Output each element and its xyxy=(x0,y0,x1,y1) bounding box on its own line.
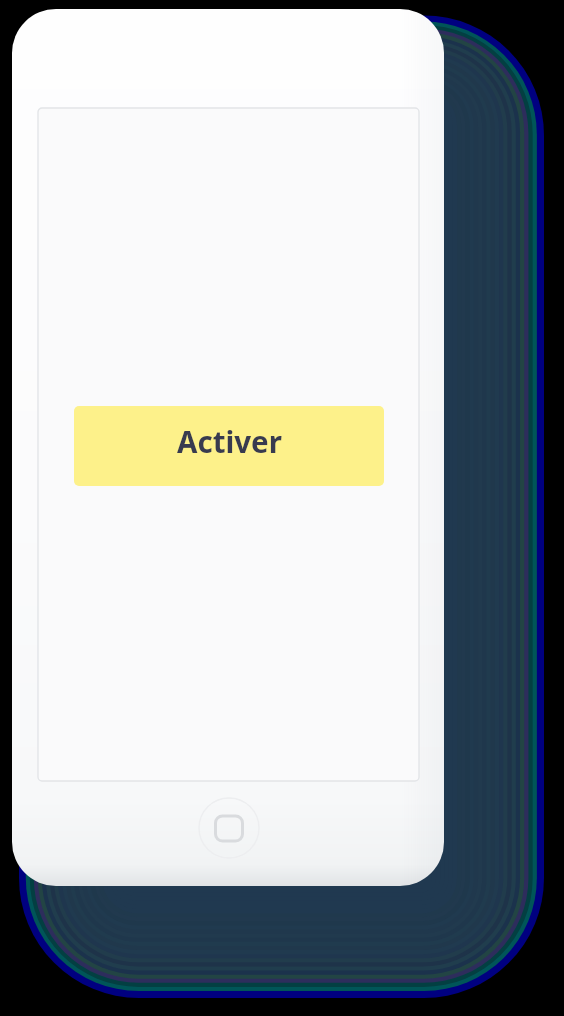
button[interactable]: Home xyxy=(199,798,259,858)
button[interactable]: Activer xyxy=(74,406,384,486)
staticText: Activer xyxy=(177,421,282,461)
